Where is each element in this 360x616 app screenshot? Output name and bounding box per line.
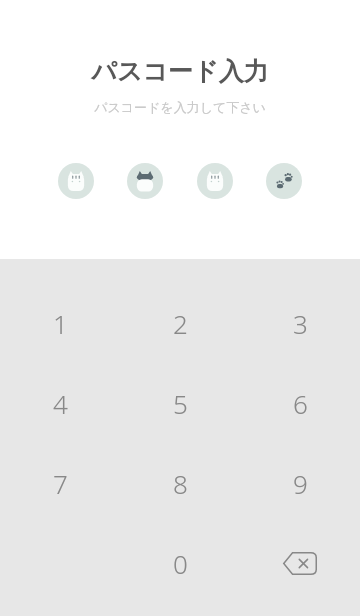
button[interactable]: Passcode digit 3 bbox=[197, 163, 233, 199]
button[interactable]: Passcode digit 4 bbox=[266, 163, 302, 199]
staticText: 6 bbox=[293, 386, 308, 421]
staticText: 7 bbox=[53, 466, 68, 501]
staticText: 5 bbox=[173, 386, 188, 421]
button[interactable]: Backspace bbox=[240, 523, 360, 603]
button[interactable]: Passcode digit 1 bbox=[58, 163, 94, 199]
button[interactable]: 5 bbox=[120, 363, 240, 443]
button[interactable]: 9 bbox=[240, 443, 360, 523]
button[interactable]: 8 bbox=[120, 443, 240, 523]
staticText: 9 bbox=[293, 466, 308, 501]
staticText: 0 bbox=[173, 546, 188, 581]
button[interactable]: Passcode digit 2 bbox=[127, 163, 163, 199]
staticText: パスコードを入力して下さい bbox=[94, 99, 266, 115]
staticText: 8 bbox=[173, 466, 188, 501]
staticText: 2 bbox=[173, 306, 188, 341]
button[interactable]: 4 bbox=[0, 363, 120, 443]
button[interactable]: 2 bbox=[120, 283, 240, 363]
button[interactable]: 1 bbox=[0, 283, 120, 363]
button[interactable]: 3 bbox=[240, 283, 360, 363]
staticText: 1 bbox=[53, 306, 68, 341]
staticText: 3 bbox=[293, 306, 308, 341]
staticText: 4 bbox=[53, 386, 68, 421]
button[interactable]: 6 bbox=[240, 363, 360, 443]
staticText: パスコード入力 bbox=[91, 56, 269, 87]
button[interactable]: 7 bbox=[0, 443, 120, 523]
button[interactable]: 0 bbox=[120, 523, 240, 603]
